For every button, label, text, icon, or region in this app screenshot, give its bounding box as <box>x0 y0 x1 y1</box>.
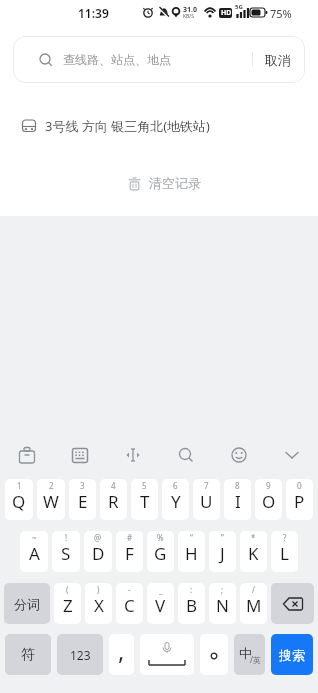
staticText: 7 <box>204 480 209 491</box>
staticText: Y <box>171 490 181 513</box>
staticText: 5G <box>235 3 243 11</box>
button[interactable]: 3 <box>69 479 96 520</box>
staticText: 中 <box>239 645 252 661</box>
staticText: 分词 <box>14 596 40 612</box>
staticText: 123 <box>70 647 91 663</box>
staticText: 2 <box>49 480 54 491</box>
button[interactable]: @ <box>84 531 112 572</box>
button[interactable] <box>0 443 53 467</box>
staticText: K <box>248 542 259 565</box>
staticText: ” <box>221 532 224 543</box>
staticText: _ <box>159 584 163 595</box>
button[interactable]: 3号线 方向 银三角北(地铁站) <box>0 108 318 144</box>
staticText: R <box>108 490 119 513</box>
button[interactable]: ” <box>209 531 236 572</box>
button[interactable]: 2 <box>37 479 65 520</box>
staticText: V <box>155 594 166 617</box>
button[interactable] <box>106 443 159 467</box>
button[interactable]: 5 <box>131 479 158 520</box>
button[interactable] <box>212 443 265 467</box>
staticText: : <box>190 584 193 595</box>
button[interactable]: 9 <box>255 479 282 520</box>
staticText: 31.0 <box>183 5 197 15</box>
staticText: ( <box>66 584 69 595</box>
staticText: ~ <box>32 532 37 543</box>
button[interactable]: * <box>240 531 267 572</box>
button[interactable]: 查线路、站点、地点 <box>13 36 305 83</box>
staticText: L <box>280 542 289 565</box>
staticText: @ <box>94 532 102 543</box>
staticText: 查线路、站点、地点 <box>63 52 171 67</box>
button[interactable] <box>271 583 314 624</box>
button[interactable]: , <box>109 634 134 675</box>
staticText: , <box>118 634 125 667</box>
button[interactable]: 中 <box>234 634 265 675</box>
button[interactable] <box>200 634 228 675</box>
button[interactable]: 清空记录 <box>5 170 318 196</box>
staticText: B <box>186 594 198 617</box>
staticText: A <box>29 542 40 565</box>
staticText: 取消 <box>265 52 291 68</box>
button[interactable]: ( <box>54 583 81 624</box>
staticText: 3 <box>80 480 85 491</box>
staticText: Q <box>12 490 26 513</box>
button[interactable]: ; <box>209 583 236 624</box>
button[interactable]: ? <box>271 531 298 572</box>
button[interactable]: 分词 <box>4 583 50 624</box>
button[interactable]: 符 <box>5 634 51 675</box>
button[interactable]: % <box>147 531 174 572</box>
staticText: F <box>125 542 134 565</box>
staticText: 8 <box>235 480 240 491</box>
button[interactable]: : <box>178 583 205 624</box>
button[interactable]: ~ <box>20 531 48 572</box>
staticText: HD <box>221 8 232 18</box>
staticText: 清空记录 <box>149 175 201 191</box>
button[interactable]: 1 <box>5 479 33 520</box>
staticText: T <box>140 490 150 513</box>
button[interactable]: 取消 <box>251 36 305 83</box>
staticText: % <box>157 532 164 543</box>
button[interactable] <box>159 443 212 467</box>
staticText: 75% <box>270 6 292 21</box>
staticText: E <box>78 490 88 513</box>
button[interactable]: / <box>240 583 267 624</box>
button[interactable]: 0 <box>286 479 313 520</box>
button[interactable]: 7 <box>193 479 220 520</box>
staticText: I <box>235 490 241 513</box>
staticText: ? <box>283 532 287 543</box>
staticText: 3号线 方向 银三角北(地铁站) <box>45 117 210 135</box>
staticText: X <box>94 594 104 617</box>
button[interactable]: 6 <box>162 479 189 520</box>
button[interactable]: ) <box>85 583 112 624</box>
staticText: 1 <box>17 480 22 491</box>
staticText: ! <box>65 532 68 543</box>
button[interactable]: 8 <box>224 479 251 520</box>
staticText: O <box>262 490 276 513</box>
button[interactable] <box>53 443 106 467</box>
staticText: Z <box>63 594 73 617</box>
button[interactable]: ! <box>52 531 80 572</box>
button[interactable]: 4 <box>100 479 127 520</box>
staticText: 符 <box>21 646 35 664</box>
staticText: N <box>216 594 229 617</box>
staticText: / <box>252 584 255 595</box>
staticText: G <box>154 542 167 565</box>
staticText: ) <box>97 584 100 595</box>
button[interactable] <box>140 634 194 675</box>
button[interactable]: 123 <box>57 634 103 675</box>
button[interactable]: _ <box>147 583 174 624</box>
button[interactable]: # <box>116 531 143 572</box>
staticText: D <box>92 542 105 565</box>
staticText: C <box>124 594 135 617</box>
staticText: 5 <box>142 480 147 491</box>
staticText: * <box>251 532 256 543</box>
staticText: KB/S <box>183 13 194 20</box>
button[interactable]: “ <box>178 531 205 572</box>
staticText: S <box>61 542 71 565</box>
staticText: 搜索 <box>279 647 305 663</box>
button[interactable]: 搜索 <box>271 634 313 675</box>
staticText: 4 <box>111 480 116 491</box>
button[interactable]: - <box>116 583 143 624</box>
staticText: # <box>127 532 133 543</box>
button[interactable] <box>265 443 318 467</box>
